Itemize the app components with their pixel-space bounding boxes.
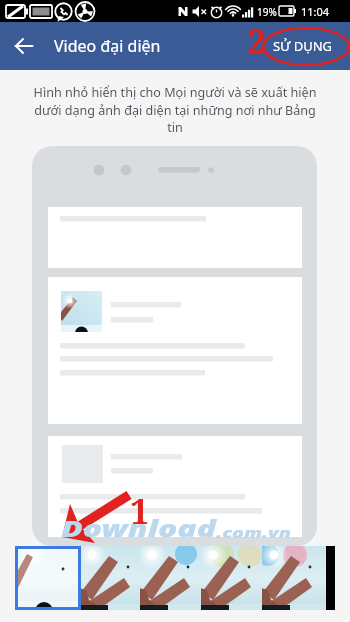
staticText: SỬ DỤNG [273,37,332,55]
staticText: 1 [130,488,150,534]
staticText: .com.vn [216,524,292,542]
button[interactable]: SỬ DỤNG [273,37,332,55]
staticText: Video đại diện [54,35,161,57]
button[interactable]: Back [0,22,48,70]
staticText: 11:04 [301,4,330,19]
staticText: Download [61,513,216,543]
staticText: 2 [247,18,267,64]
staticText: 19% [257,5,277,19]
staticText: Hình nhỏ hiển thị cho Mọi người và sẽ xu… [30,84,320,135]
